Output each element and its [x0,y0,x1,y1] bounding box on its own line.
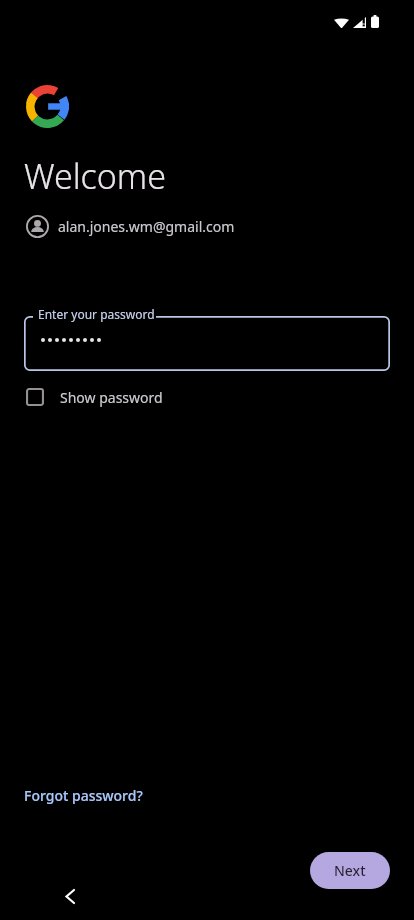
staticText: Show password [60,388,163,407]
staticText: Enter your password [38,306,155,322]
button[interactable]: Forgot password? [22,782,145,809]
staticText: alan.jones.wm@gmail.com [58,217,235,236]
staticText: Forgot password? [24,786,143,805]
staticText: Next [334,861,366,880]
button[interactable]: Back [52,878,88,914]
button[interactable] [41,338,104,342]
staticText: Welcome [24,153,166,199]
button[interactable]: Next [310,852,390,889]
button[interactable]: Show password [24,379,163,415]
button[interactable]: alan.jones.wm@gmail.com [24,211,237,242]
